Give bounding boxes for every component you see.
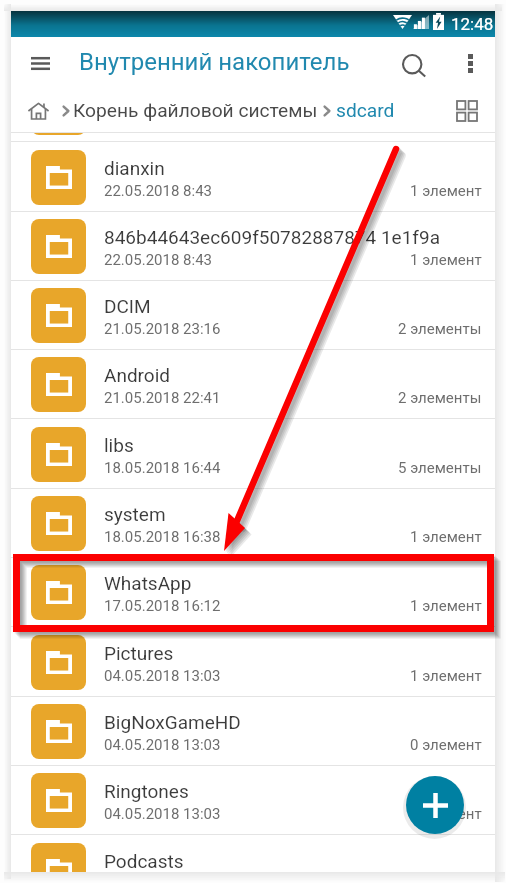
button[interactable]: Pictures [11, 628, 495, 697]
button[interactable]: Ringtones [11, 766, 495, 835]
button[interactable]: Menu [19, 42, 61, 84]
staticText: 04.05.2018 13:03 [104, 805, 221, 823]
staticText: Ringtones [104, 780, 189, 802]
staticText: 18.05.2018 16:44 [104, 459, 221, 477]
button[interactable]: system [11, 489, 495, 558]
button[interactable]: Podcasts [11, 836, 495, 872]
button[interactable]: Android [11, 350, 495, 419]
staticText: 1 элемент [410, 805, 482, 823]
button[interactable]: Home [28, 100, 49, 121]
staticText: 12:48 [451, 14, 494, 34]
button[interactable]: More options [448, 41, 492, 85]
staticText: 846b44643ec609f50782887874 1e1f9a [104, 226, 440, 248]
staticText: BigNoxGameHD [104, 711, 241, 733]
button[interactable]: Add [406, 776, 464, 834]
staticText: Pictures [104, 642, 174, 664]
button[interactable]: Search [392, 44, 436, 88]
staticText: 21.05.2018 23:16 [104, 320, 221, 338]
staticText: Podcasts [104, 850, 184, 872]
staticText: Внутренний накопитель [79, 48, 350, 76]
staticText: Android [104, 364, 171, 386]
staticText: 04.05.2018 13:03 [104, 736, 221, 754]
staticText: 04.05.2018 13:03 [104, 667, 221, 685]
staticText: 1 элемент [410, 667, 482, 685]
staticText: Корень файловой системы [73, 99, 318, 122]
button[interactable]: WhatsApp [11, 558, 495, 627]
staticText: system [104, 503, 166, 525]
button[interactable]: Grid view [450, 94, 484, 128]
button[interactable]: BigNoxGameHD [11, 697, 495, 766]
staticText: 17.05.2018 16:12 [104, 597, 221, 615]
staticText: 22.05.2018 8:43 [104, 182, 212, 200]
staticText: 1 элемент [410, 597, 482, 615]
staticText: WhatsApp [104, 572, 192, 594]
staticText: 1 элемент [410, 251, 482, 269]
staticText: 1 элемент [410, 528, 482, 546]
button[interactable]: libs [11, 420, 495, 489]
staticText: dianxin [104, 157, 165, 179]
staticText: 2 элементы [398, 320, 482, 338]
button[interactable]: dianxin [11, 143, 495, 212]
staticText: libs [104, 434, 134, 456]
staticText: 22.05.2018 8:43 [104, 251, 212, 269]
staticText: 5 элементы [398, 459, 482, 477]
staticText: 21.05.2018 22:41 [104, 389, 221, 407]
staticText: DCIM [104, 295, 151, 317]
staticText: 1 элемент [410, 182, 482, 200]
staticText: 2 элементы [398, 389, 482, 407]
staticText: 0 элемент [410, 736, 482, 754]
staticText: 18.05.2018 16:38 [104, 528, 221, 546]
button[interactable]: 846b44643ec609f50782887874 1e1f9a [11, 212, 495, 281]
button[interactable]: DCIM [11, 281, 495, 350]
staticText: sdcard [336, 99, 395, 122]
